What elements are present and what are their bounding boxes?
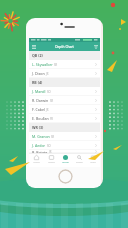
button[interactable]: Filter — [91, 42, 100, 51]
staticText: QB (2) — [32, 53, 43, 58]
staticText: J. Mandl — [32, 89, 46, 94]
button[interactable]: L. Skywalker — [29, 60, 100, 69]
staticText: SO — [47, 144, 51, 148]
staticText: J. Dixon — [32, 71, 45, 76]
staticText: M. Granon — [32, 134, 50, 139]
button[interactable]: M. Granon — [29, 132, 100, 141]
staticText: FR — [50, 117, 53, 121]
button[interactable]: B. Rotate — [29, 150, 100, 153]
button[interactable]: J. Aedor — [29, 141, 100, 150]
button[interactable]: J. Mandl — [29, 87, 100, 96]
staticText: SR — [50, 99, 54, 103]
staticText: Roster — [62, 161, 69, 164]
staticText: SR — [51, 135, 55, 139]
staticText: JR — [49, 150, 52, 153]
button[interactable]: More — [86, 153, 100, 164]
staticText: RB (4) — [32, 80, 43, 85]
button[interactable]: F. Cabel — [29, 105, 100, 114]
staticText: JR — [46, 72, 49, 76]
staticText: L. Skywalker — [32, 62, 53, 67]
staticText: J. Aedor — [32, 143, 46, 148]
staticText: More — [90, 161, 96, 164]
staticText: SR — [54, 63, 58, 67]
staticText: F. Cabel — [32, 107, 45, 112]
staticText: Teams — [48, 161, 55, 164]
staticText: Home — [33, 161, 40, 164]
button[interactable]: J. Dixon — [29, 69, 100, 78]
button[interactable]: Home — [58, 169, 73, 184]
staticText: SO — [47, 90, 51, 94]
staticText: JR — [46, 108, 49, 112]
button[interactable]: Roster — [58, 153, 72, 164]
staticText: Search — [76, 161, 83, 164]
staticText: E. Boullan — [32, 116, 49, 121]
button[interactable]: E. Boullan — [29, 114, 100, 123]
button[interactable]: Home — [29, 153, 44, 164]
button[interactable]: Teams — [44, 153, 58, 164]
staticText: WR (3) — [32, 125, 44, 130]
button[interactable]: Search — [72, 153, 86, 164]
staticText: B. Rotate — [32, 150, 48, 153]
button[interactable]: Navigation menu — [29, 42, 38, 51]
button[interactable]: R. Darwin — [29, 96, 100, 105]
staticText: Depth Chart — [55, 45, 74, 49]
staticText: R. Darwin — [32, 98, 49, 103]
